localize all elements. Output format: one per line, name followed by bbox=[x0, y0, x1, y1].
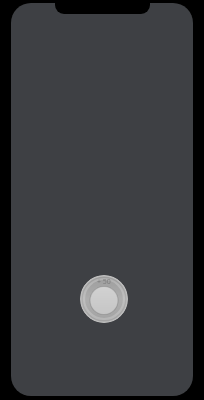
staticText: + 50 bbox=[97, 277, 111, 287]
button[interactable]: Shutter button bbox=[80, 275, 128, 323]
